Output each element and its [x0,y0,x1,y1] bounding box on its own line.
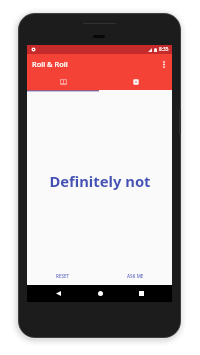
button[interactable]: Dice [99,74,172,90]
button[interactable]: Recent apps [131,285,151,302]
staticText: 8:35 [159,46,169,53]
button[interactable]: Home [90,285,110,302]
button[interactable]: More options [157,54,171,74]
staticText: RESET [56,273,70,279]
staticText: ASK ME [127,273,144,279]
button[interactable]: RESET [27,270,99,282]
staticText: Definitely not [49,171,151,191]
button[interactable]: Rules [27,74,99,90]
staticText: Roll & Roll [32,59,68,69]
button[interactable]: ASK ME [99,270,172,282]
button[interactable]: Back [48,285,68,302]
